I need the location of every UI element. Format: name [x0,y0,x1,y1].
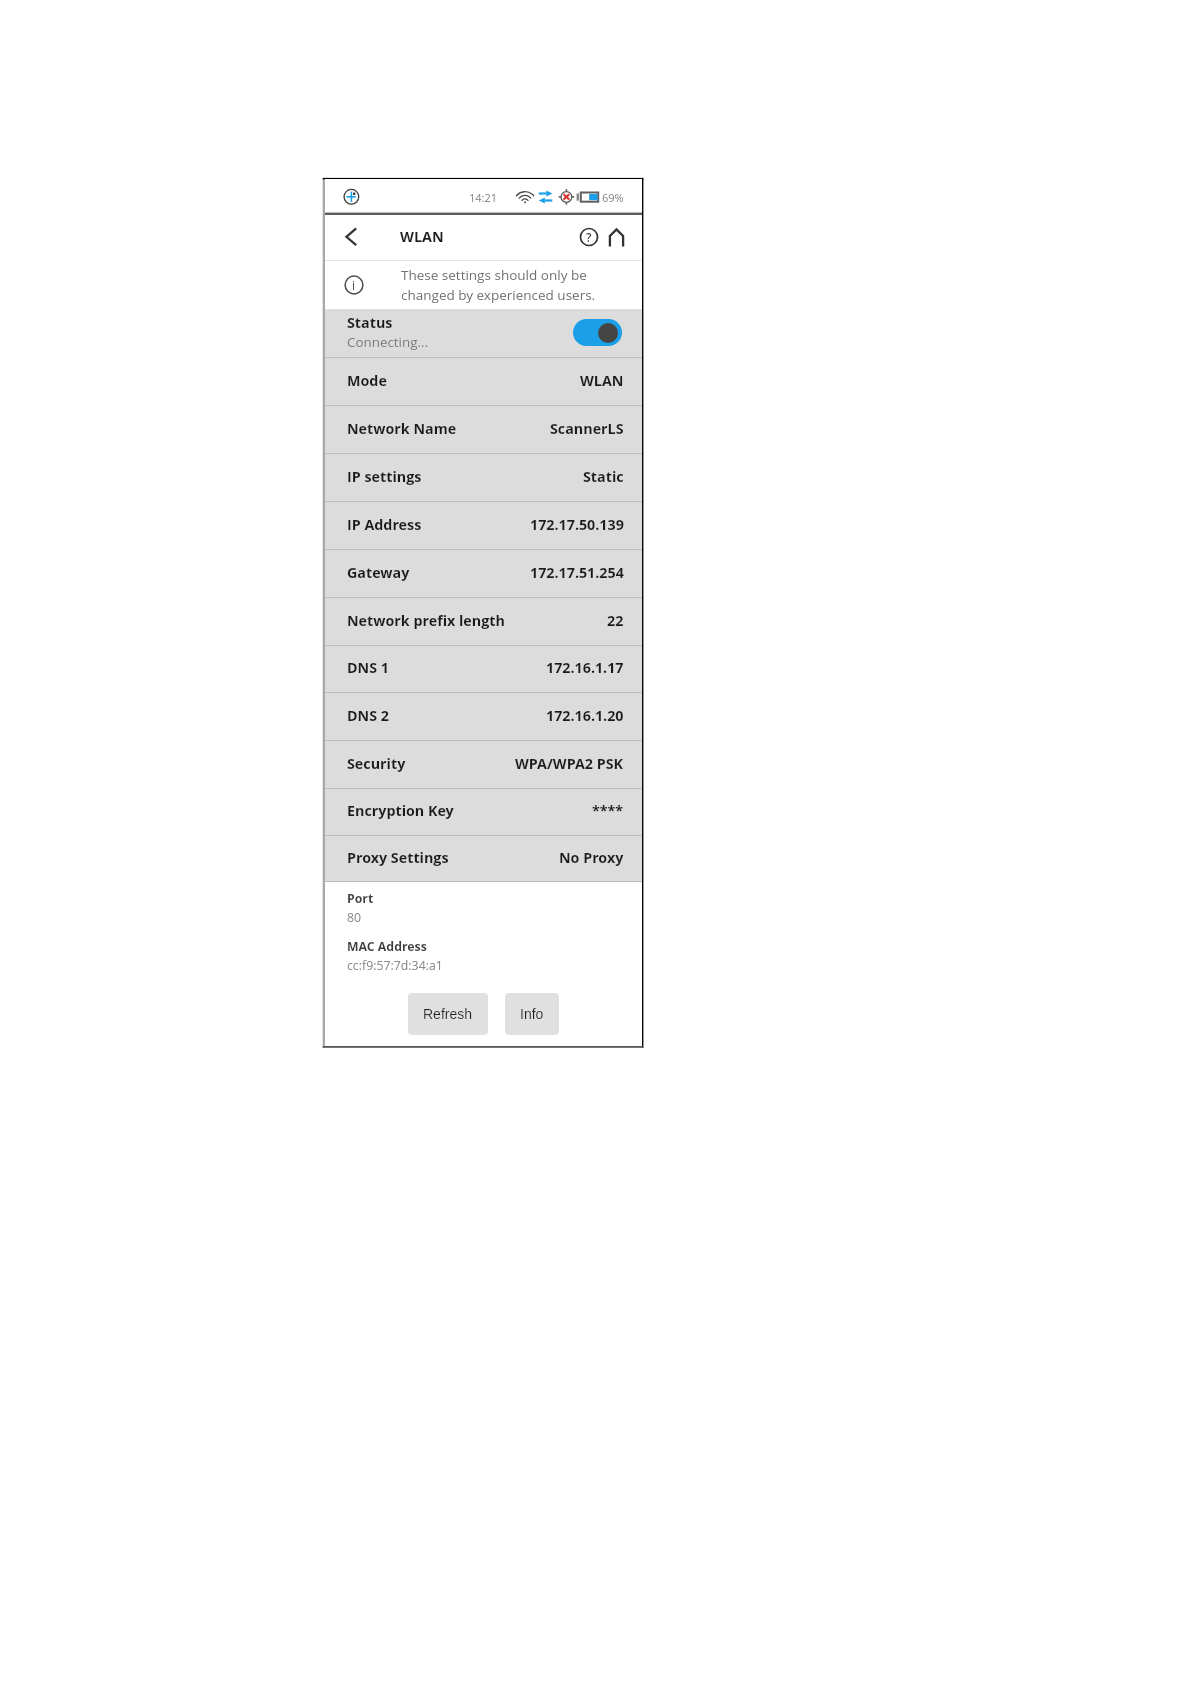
staticText: Security [347,754,406,773]
button[interactable]: Network prefix length [325,598,642,646]
staticText: IP settings [347,467,422,486]
button[interactable]: Info [505,993,559,1035]
button[interactable]: IP Address [325,502,642,550]
button[interactable]: DNS 1 [325,646,642,693]
staticText: Connecting... [347,333,429,351]
staticText: 172.16.1.20 [546,706,624,725]
staticText: Network prefix length [347,611,505,630]
staticText: WLAN [580,371,624,390]
staticText: WPA/WPA2 PSK [515,754,624,773]
staticText: Encryption Key [347,801,454,820]
button[interactable]: IP settings [325,454,642,502]
button[interactable]: Network Name [325,406,642,454]
staticText: Gateway [347,563,410,582]
staticText: ScannerLS [550,419,624,438]
staticText: Info [520,1006,544,1022]
button[interactable]: Status [325,309,642,358]
staticText: MAC Address [347,938,427,955]
staticText: 172.17.50.139 [530,515,624,534]
staticText: Status [347,313,393,332]
staticText: cc:f9:57:7d:34:a1 [347,957,443,974]
staticText: 80 [347,909,362,926]
staticText: WLAN [400,227,444,247]
staticText: Mode [347,371,387,390]
staticText: Proxy Settings [347,848,449,867]
staticText: 172.16.1.17 [546,658,624,677]
staticText: i [352,277,356,293]
button[interactable]: Refresh [408,993,488,1035]
button[interactable]: Home [599,218,629,258]
staticText: 69% [602,190,624,205]
staticText: IP Address [347,515,422,534]
staticText: Port [347,890,374,907]
button[interactable]: Mode [325,358,642,406]
staticText: Network Name [347,419,457,438]
button[interactable]: Security [325,741,642,789]
staticText: Refresh [423,1006,473,1022]
staticText: These settings should only be changed by… [401,266,596,304]
staticText: Static [583,467,624,486]
staticText: ? [586,229,592,245]
button[interactable]: Proxy Settings [325,836,642,882]
staticText: 14:21 [469,190,498,205]
staticText: DNS 2 [347,706,389,725]
staticText: 22 [607,611,624,630]
button[interactable]: Back [335,218,365,258]
button[interactable]: Help [573,218,605,258]
staticText: **** [592,801,624,820]
button[interactable]: DNS 2 [325,693,642,741]
button[interactable]: Encryption Key [325,789,642,836]
staticText: 172.17.51.254 [530,563,624,582]
staticText: No Proxy [559,848,624,867]
button[interactable]: Gateway [325,550,642,598]
staticText: DNS 1 [347,658,389,677]
